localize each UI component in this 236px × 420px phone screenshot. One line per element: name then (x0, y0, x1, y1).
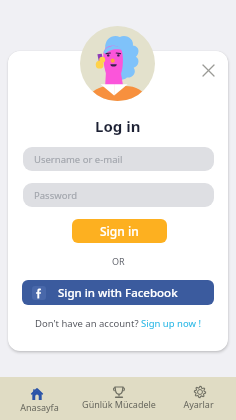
staticText: Günlük Mücadele (82, 398, 156, 410)
staticText: Anasayfa (20, 401, 59, 413)
button[interactable]: Sign in (72, 219, 167, 243)
button[interactable]: Ayarlar (160, 377, 236, 420)
button[interactable]: Username or e-mail (23, 147, 214, 171)
button[interactable]: Password (23, 183, 214, 207)
staticText: Don't have an account? Sign up now ! (35, 317, 201, 330)
staticText: OR (112, 255, 125, 267)
staticText: Log in (95, 116, 141, 136)
staticText: Ayarlar (183, 398, 214, 410)
button[interactable]: Günlük Mücadele (78, 377, 160, 420)
button[interactable]: Close (196, 58, 220, 82)
staticText: Sign in (100, 223, 139, 239)
button[interactable]: Sign in with Facebook (22, 280, 214, 305)
staticText: Sign in with Facebook (58, 285, 178, 301)
button[interactable]: Anasayfa (0, 377, 78, 420)
staticText: Password (34, 189, 77, 202)
staticText: Username or e-mail (34, 153, 123, 166)
